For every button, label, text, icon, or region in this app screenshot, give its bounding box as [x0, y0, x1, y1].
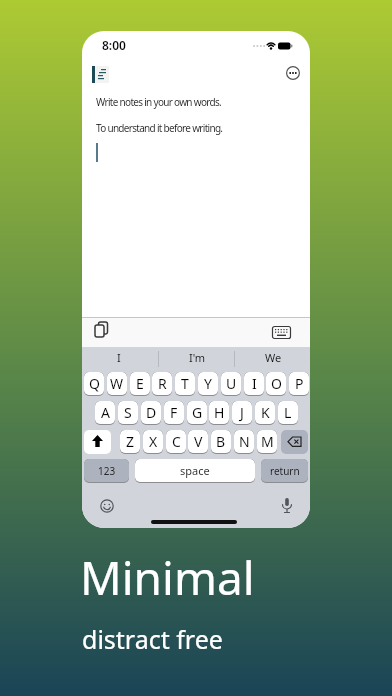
staticText: I — [117, 350, 121, 365]
staticText: 8:00 — [102, 37, 126, 53]
button[interactable] — [281, 430, 308, 454]
staticText: G — [192, 403, 203, 422]
staticText: T — [181, 374, 189, 393]
button[interactable] — [84, 430, 111, 454]
button[interactable]: C — [166, 430, 186, 453]
button[interactable] — [100, 499, 114, 513]
button[interactable] — [280, 497, 294, 515]
staticText: H — [214, 403, 225, 422]
button[interactable]: G — [187, 401, 207, 424]
staticText: U — [226, 374, 237, 393]
staticText: N — [239, 432, 250, 451]
staticText: C — [172, 432, 181, 451]
staticText: D — [146, 403, 157, 422]
button[interactable]: Z — [120, 430, 140, 453]
staticText: W — [110, 374, 124, 393]
button[interactable]: K — [255, 401, 275, 424]
button[interactable]: I — [244, 372, 264, 395]
button[interactable]: N — [234, 430, 254, 453]
button[interactable]: L — [278, 401, 298, 424]
button[interactable]: U — [221, 372, 241, 395]
staticText: B — [216, 432, 226, 451]
button[interactable]: A — [95, 401, 115, 424]
staticText: E — [136, 374, 144, 393]
staticText: F — [170, 403, 178, 422]
button[interactable]: V — [188, 430, 208, 453]
button[interactable]: X — [143, 430, 163, 453]
button[interactable]: space — [135, 459, 255, 482]
staticText: Z — [126, 432, 135, 451]
staticText: S — [124, 403, 132, 422]
button[interactable]: S — [118, 401, 138, 424]
button[interactable]: W — [107, 372, 127, 395]
staticText: 123 — [98, 464, 116, 478]
staticText: Write notes in your own words. — [96, 95, 221, 109]
staticText: return — [270, 464, 300, 478]
staticText: Y — [204, 374, 212, 393]
staticText: P — [295, 374, 304, 393]
staticText: X — [149, 432, 158, 451]
button[interactable]: T — [175, 372, 195, 395]
staticText: To understand it before writing. — [96, 121, 223, 135]
button[interactable]: R — [152, 372, 172, 395]
staticText: O — [271, 374, 282, 393]
button[interactable] — [272, 326, 292, 340]
staticText: I — [252, 374, 257, 393]
staticText: J — [240, 403, 244, 422]
button[interactable] — [92, 66, 109, 83]
button[interactable]: M — [257, 430, 277, 453]
button[interactable]: B — [211, 430, 231, 453]
staticText: M — [261, 432, 274, 451]
button[interactable]: Q — [84, 372, 104, 395]
button[interactable]: return — [261, 459, 308, 482]
button[interactable]: E — [130, 372, 150, 395]
button[interactable]: Y — [198, 372, 218, 395]
button[interactable]: F — [164, 401, 184, 424]
button[interactable]: P — [289, 372, 309, 395]
button[interactable]: J — [232, 401, 252, 424]
staticText: distract free — [82, 622, 223, 656]
staticText: K — [261, 403, 270, 422]
staticText: V — [194, 432, 203, 451]
button[interactable]: 123 — [84, 459, 129, 482]
staticText: R — [158, 374, 167, 393]
button[interactable] — [286, 66, 300, 80]
staticText: Q — [89, 374, 100, 393]
button[interactable]: H — [209, 401, 229, 424]
staticText: Minimal — [80, 546, 255, 609]
button[interactable] — [94, 321, 110, 339]
staticText: I'm — [189, 350, 206, 365]
button[interactable]: O — [266, 372, 286, 395]
staticText: space — [180, 463, 210, 478]
staticText: We — [265, 350, 282, 365]
staticText: A — [101, 403, 110, 422]
staticText: L — [284, 403, 292, 422]
button[interactable]: D — [141, 401, 161, 424]
